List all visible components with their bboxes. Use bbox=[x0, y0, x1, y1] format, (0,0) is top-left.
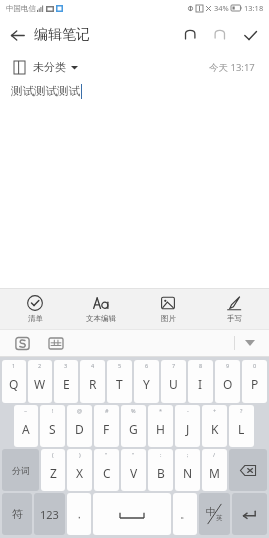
staticText: 3 bbox=[64, 362, 68, 369]
staticText: N bbox=[183, 465, 193, 481]
button[interactable]: / bbox=[202, 449, 227, 491]
staticText: 2 bbox=[38, 362, 42, 369]
button[interactable]: 。 bbox=[173, 493, 197, 535]
staticText: @ bbox=[77, 407, 82, 414]
staticText: G bbox=[129, 421, 138, 437]
button[interactable]: 8 bbox=[188, 360, 213, 403]
button[interactable]: 2 bbox=[28, 360, 52, 403]
staticText: 4 bbox=[91, 362, 95, 369]
staticText: B bbox=[157, 465, 165, 481]
button[interactable]: ) bbox=[67, 449, 92, 491]
staticText: Q bbox=[9, 376, 19, 392]
staticText: 今天 13:17 bbox=[209, 61, 255, 74]
staticText: C bbox=[103, 465, 111, 481]
staticText: 13:18 bbox=[244, 3, 264, 13]
staticText: P bbox=[251, 376, 259, 392]
staticText: ， bbox=[74, 508, 84, 521]
button[interactable]: 未分类 bbox=[14, 60, 78, 74]
staticText: 中 bbox=[206, 505, 216, 518]
button[interactable]: Keyboard layout bbox=[46, 333, 66, 353]
staticText: U bbox=[169, 376, 178, 392]
button[interactable]: 文本编辑 bbox=[70, 289, 132, 329]
staticText: ! bbox=[52, 407, 54, 414]
button[interactable]: Backspace bbox=[229, 449, 267, 491]
staticText: M bbox=[209, 465, 220, 481]
staticText: X bbox=[76, 465, 84, 481]
staticText: 6 bbox=[145, 362, 149, 369]
button[interactable]: ! bbox=[40, 405, 65, 447]
button[interactable]: 符 bbox=[2, 493, 32, 535]
button[interactable]: 1 bbox=[2, 360, 26, 403]
button[interactable]: Redo bbox=[205, 20, 235, 50]
button[interactable]: Enter bbox=[232, 493, 267, 535]
staticText: ? bbox=[240, 407, 243, 414]
staticText: L bbox=[238, 421, 245, 437]
button[interactable]: Space bbox=[93, 493, 171, 535]
staticText: 图片 bbox=[161, 314, 176, 323]
staticText: 7 bbox=[172, 362, 176, 369]
button[interactable]: " bbox=[121, 449, 146, 491]
button[interactable]: 7 bbox=[161, 360, 186, 403]
staticText: Y bbox=[143, 376, 150, 392]
staticText: O bbox=[223, 376, 233, 392]
staticText: 手写 bbox=[227, 314, 242, 323]
button[interactable]: Save bbox=[235, 20, 265, 50]
button[interactable]: 图片 bbox=[137, 289, 199, 329]
button[interactable]: + bbox=[202, 405, 227, 447]
button[interactable]: Undo bbox=[175, 20, 205, 50]
staticText: 123 bbox=[40, 507, 59, 522]
button[interactable]: " bbox=[94, 449, 119, 491]
button[interactable]: 0 bbox=[242, 360, 267, 403]
button[interactable]: ; bbox=[175, 449, 200, 491]
button[interactable]: % bbox=[121, 405, 146, 447]
button[interactable]: 123 bbox=[34, 493, 65, 535]
button[interactable]: - bbox=[175, 405, 200, 447]
button[interactable]: Chinese English toggle bbox=[199, 493, 230, 535]
button[interactable]: 手写 bbox=[203, 289, 265, 329]
button[interactable]: ， bbox=[67, 493, 91, 535]
staticText: # bbox=[105, 407, 109, 414]
staticText: 清单 bbox=[28, 314, 43, 323]
button[interactable]: ~ bbox=[14, 405, 38, 447]
button[interactable]: # bbox=[94, 405, 119, 447]
button[interactable]: 清单 bbox=[4, 289, 66, 329]
button[interactable]: ? bbox=[229, 405, 254, 447]
staticText: 分词 bbox=[12, 465, 30, 476]
button[interactable]: @ bbox=[67, 405, 92, 447]
button[interactable]: 5 bbox=[107, 360, 132, 403]
staticText: 未分类 bbox=[33, 60, 66, 74]
staticText: E bbox=[63, 376, 70, 392]
staticText: 0 bbox=[253, 362, 257, 369]
staticText: A bbox=[22, 421, 30, 437]
staticText: " bbox=[132, 451, 135, 458]
button[interactable]: Back bbox=[0, 18, 34, 52]
staticText: K bbox=[211, 421, 219, 437]
staticText: : bbox=[160, 451, 162, 458]
button[interactable]: Sogou IME bbox=[12, 333, 32, 353]
staticText: 编辑笔记 bbox=[34, 26, 90, 44]
staticText: R bbox=[89, 376, 97, 392]
staticText: F bbox=[103, 421, 110, 437]
button[interactable]: 3 bbox=[54, 360, 78, 403]
staticText: 符 bbox=[12, 507, 23, 521]
button[interactable]: Collapse keyboard bbox=[235, 329, 265, 357]
button[interactable]: 6 bbox=[134, 360, 159, 403]
staticText: / bbox=[213, 451, 216, 458]
button[interactable]: 分词 bbox=[2, 449, 39, 491]
button[interactable]: : bbox=[148, 449, 173, 491]
staticText: 34% bbox=[214, 3, 229, 13]
staticText: 9 bbox=[226, 362, 230, 369]
staticText: + bbox=[213, 407, 217, 414]
staticText: ; bbox=[187, 451, 189, 458]
staticText: Z bbox=[50, 465, 57, 481]
staticText: H bbox=[156, 421, 165, 437]
staticText: 测试测试测试 bbox=[11, 84, 80, 98]
button[interactable]: 9 bbox=[215, 360, 240, 403]
button[interactable]: * bbox=[148, 405, 173, 447]
button[interactable]: 4 bbox=[80, 360, 105, 403]
staticText: ) bbox=[79, 451, 81, 458]
staticText: " bbox=[105, 451, 108, 458]
staticText: 中国电信 bbox=[6, 4, 36, 13]
staticText: 。 bbox=[180, 508, 190, 521]
button[interactable]: ( bbox=[41, 449, 65, 491]
